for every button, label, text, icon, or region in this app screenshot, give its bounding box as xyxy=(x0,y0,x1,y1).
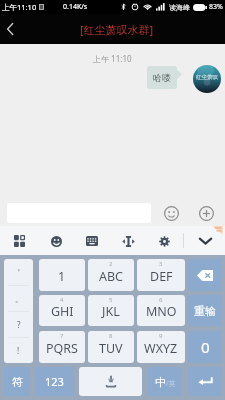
button[interactable]: 0 xyxy=(188,331,222,363)
staticText: ' xyxy=(18,267,20,278)
staticText: 2 xyxy=(109,260,113,268)
button[interactable]: 符 xyxy=(4,367,30,396)
button[interactable]: 123 xyxy=(35,367,74,396)
button[interactable]: WXYZ xyxy=(137,331,185,363)
button[interactable]: grid xyxy=(4,226,34,256)
button[interactable]: Enter xyxy=(188,367,222,396)
staticText: 1 xyxy=(58,268,66,285)
staticText: 哈喽 xyxy=(153,72,171,83)
staticText: 5 xyxy=(109,296,113,304)
button[interactable]: JKL xyxy=(88,295,134,326)
button[interactable]: ? xyxy=(4,312,33,337)
staticText: JKL xyxy=(102,303,120,320)
staticText: [红尘萧叹水群] xyxy=(80,22,154,37)
button[interactable]: GHI xyxy=(39,295,85,326)
staticText: 符 xyxy=(12,375,23,389)
staticText: WXYZ xyxy=(144,340,178,357)
staticText: PQRS xyxy=(46,340,78,357)
staticText: 读海峰 xyxy=(169,3,190,12)
staticText: MNO xyxy=(146,303,177,320)
button[interactable]: MNO xyxy=(137,295,185,326)
staticText: 83% xyxy=(209,2,223,12)
button[interactable]: 中 xyxy=(148,367,182,396)
button[interactable]: 重输 xyxy=(188,295,222,326)
staticText: 红尘萧叹 xyxy=(196,74,218,81)
staticText: 4 xyxy=(60,296,64,304)
staticText: 上午 11:10 xyxy=(93,53,132,64)
button[interactable]: Backspace xyxy=(188,259,222,291)
button[interactable]: 哈喽 xyxy=(147,66,177,89)
button[interactable]: Emoji xyxy=(160,202,183,225)
staticText: 9 xyxy=(159,332,163,340)
staticText: GHI xyxy=(51,303,74,320)
button[interactable]: Back xyxy=(0,14,20,44)
button[interactable]: DEF xyxy=(137,259,185,291)
button[interactable]: cursor xyxy=(113,226,143,256)
button[interactable]: kbd xyxy=(77,226,107,256)
button[interactable]: TUV xyxy=(88,331,134,363)
button[interactable]: gear xyxy=(149,226,179,256)
staticText: 上午11:10 xyxy=(2,2,37,12)
staticText: 重输 xyxy=(194,304,216,318)
staticText: ? xyxy=(17,319,21,330)
button[interactable]: 1 xyxy=(39,259,85,291)
button[interactable]: ! xyxy=(4,338,33,363)
staticText: TUV xyxy=(99,340,123,357)
button[interactable]: 。 xyxy=(4,286,33,311)
staticText: 7 xyxy=(60,332,64,340)
button[interactable]: Hide keyboard xyxy=(190,226,221,256)
button[interactable]: ABC xyxy=(88,259,134,291)
staticText: 3 xyxy=(159,260,163,268)
button[interactable]: smile xyxy=(41,226,71,256)
staticText: 123 xyxy=(45,374,64,389)
staticText: ABC xyxy=(99,268,124,285)
staticText: 。 xyxy=(15,294,23,304)
staticText: /英 xyxy=(166,379,176,389)
button[interactable]: PQRS xyxy=(39,331,85,363)
staticText: ! xyxy=(17,345,20,356)
staticText: DEF xyxy=(150,268,173,285)
staticText: 6 xyxy=(159,296,163,304)
button[interactable]: Avatar xyxy=(193,65,221,93)
button[interactable]: ' xyxy=(4,259,33,285)
button[interactable]: Voice input xyxy=(79,367,142,396)
staticText: 0 xyxy=(201,337,210,357)
staticText: 0.14K/s xyxy=(63,2,88,12)
staticText: 8 xyxy=(109,332,113,340)
staticText: 中 xyxy=(155,375,166,389)
button[interactable]: More options xyxy=(195,202,218,225)
